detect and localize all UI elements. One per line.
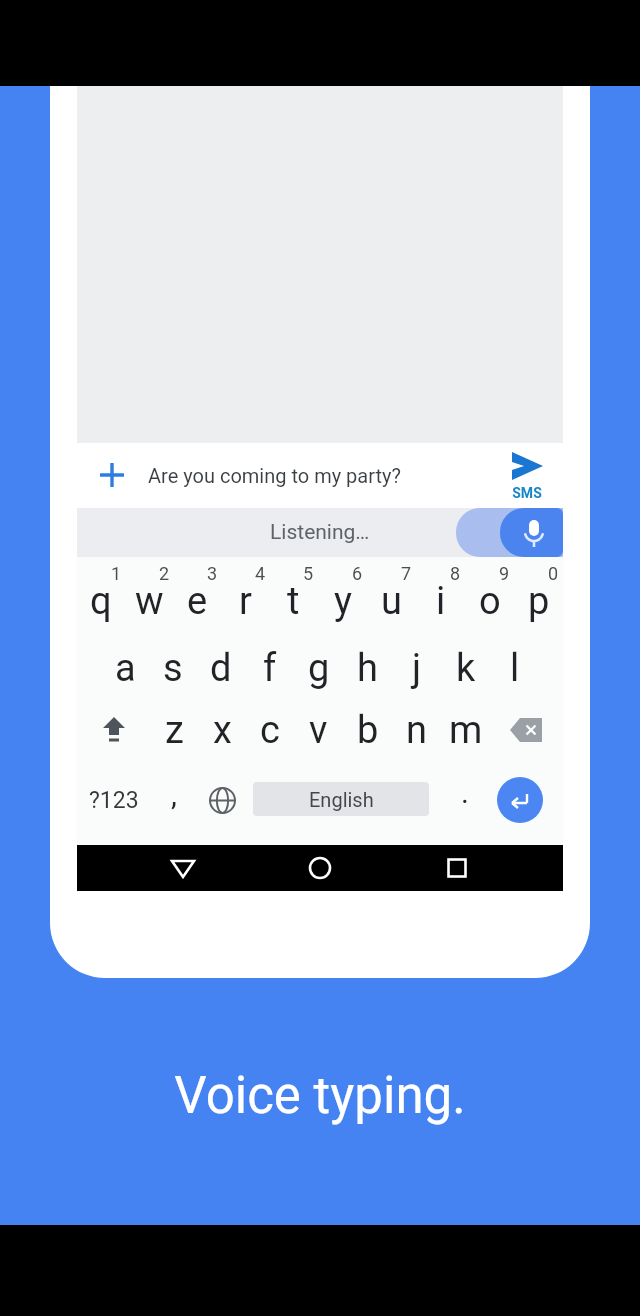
staticText: q (90, 579, 112, 624)
button[interactable]: , (150, 775, 198, 825)
button[interactable]: c (246, 706, 294, 754)
staticText: a (115, 646, 136, 691)
staticText: y (334, 579, 352, 624)
button[interactable]: q (77, 577, 125, 625)
button[interactable] (437, 848, 477, 888)
staticText: 4 (255, 563, 266, 583)
button[interactable]: z (150, 706, 198, 754)
staticText: n (406, 708, 427, 753)
button[interactable] (198, 775, 247, 825)
button[interactable]: ?123 (77, 775, 150, 825)
button[interactable] (163, 848, 203, 888)
button[interactable]: e (173, 577, 221, 625)
staticText: h (357, 646, 378, 691)
staticText: 3 (207, 563, 218, 583)
staticText: Listening… (270, 520, 370, 545)
staticText: SMS (507, 485, 547, 501)
button[interactable]: b (343, 706, 392, 754)
button[interactable]: y (318, 577, 367, 625)
button[interactable]: r (221, 577, 269, 625)
button[interactable]: English (253, 782, 429, 816)
staticText: ?123 (89, 787, 139, 814)
staticText: 1 (111, 563, 122, 583)
button[interactable]: g (294, 644, 343, 692)
button[interactable]: h (343, 644, 392, 692)
button[interactable]: x (198, 706, 246, 754)
staticText: z (165, 708, 184, 753)
staticText: j (412, 646, 422, 691)
staticText: m (449, 708, 483, 753)
staticText: x (213, 708, 232, 753)
staticText: 2 (159, 563, 170, 583)
button[interactable]: u (367, 577, 416, 625)
staticText: p (528, 579, 550, 624)
button[interactable]: j (392, 644, 441, 692)
button[interactable] (497, 777, 543, 823)
staticText: e (187, 579, 208, 624)
button[interactable]: SMS (507, 447, 547, 505)
button[interactable]: v (294, 706, 343, 754)
staticText: f (263, 646, 277, 691)
button[interactable]: w (125, 577, 173, 625)
button[interactable]: n (392, 706, 441, 754)
staticText: Are you coming to my party? (148, 464, 401, 487)
button[interactable]: . (441, 775, 489, 825)
button[interactable]: m (441, 706, 490, 754)
button[interactable] (77, 706, 150, 754)
staticText: 7 (401, 563, 412, 583)
button[interactable]: o (465, 577, 514, 625)
button[interactable]: f (245, 644, 294, 692)
button[interactable]: d (197, 644, 245, 692)
staticText: t (287, 579, 300, 624)
staticText: . (461, 775, 469, 810)
button[interactable]: i (416, 577, 465, 625)
staticText: b (357, 708, 379, 753)
button[interactable]: a (101, 644, 149, 692)
button[interactable]: l (490, 644, 539, 692)
button[interactable]: t (269, 577, 318, 625)
button[interactable]: k (441, 644, 490, 692)
staticText: 5 (303, 563, 314, 583)
staticText: English (309, 788, 374, 811)
staticText: s (163, 646, 183, 691)
staticText: i (436, 579, 446, 624)
button[interactable] (300, 848, 340, 888)
staticText: k (456, 646, 476, 691)
staticText: u (381, 579, 402, 624)
button[interactable]: s (149, 644, 197, 692)
staticText: , (171, 777, 177, 812)
staticText: 9 (499, 563, 510, 583)
button[interactable] (500, 508, 563, 557)
staticText: 8 (450, 563, 461, 583)
button[interactable]: p (514, 577, 563, 625)
staticText: Voice typing. (174, 1066, 466, 1126)
staticText: d (210, 646, 232, 691)
staticText: l (510, 646, 520, 691)
staticText: c (260, 708, 280, 753)
button[interactable] (98, 461, 126, 489)
button[interactable] (490, 706, 563, 754)
staticText: w (135, 579, 164, 624)
staticText: r (239, 579, 252, 624)
staticText: v (309, 708, 328, 753)
staticText: g (308, 646, 330, 691)
staticText: o (479, 579, 501, 624)
staticText: 0 (548, 563, 559, 583)
staticText: 6 (352, 563, 363, 583)
